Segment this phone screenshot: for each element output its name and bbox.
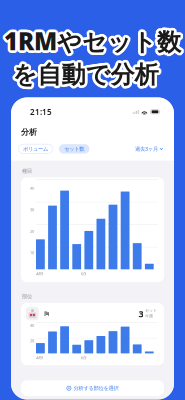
button[interactable]: 分析する部位を選択 xyxy=(11,365,174,396)
staticText: 4/09 xyxy=(36,271,43,276)
staticText: 1RMやセット数 xyxy=(5,24,182,56)
staticText: 1RMやセット数 xyxy=(2,26,179,58)
staticText: を自動で分析 xyxy=(11,58,157,88)
staticText: 20 xyxy=(30,228,34,234)
staticText: 1RMやセット数 xyxy=(7,25,184,57)
staticText: 種目 xyxy=(22,168,32,174)
staticText: 3 xyxy=(138,307,143,320)
staticText: 1RMやセット数 xyxy=(3,25,180,57)
staticText: 1RMやセット数 xyxy=(4,24,181,56)
staticText: 1RMやセット数 xyxy=(4,22,181,54)
staticText: 1RMやセット数 xyxy=(6,24,183,56)
staticText: 1RMやセット数 xyxy=(3,26,180,58)
staticText: セット数 xyxy=(64,146,84,152)
staticText: 40 xyxy=(30,185,34,191)
staticText: を自動で分析 xyxy=(11,60,157,89)
staticText: を自動で分析 xyxy=(12,59,158,88)
staticText: 40 xyxy=(30,322,34,328)
staticText: 分析 xyxy=(21,127,37,137)
staticText: 1RMやセット数 xyxy=(3,26,180,58)
staticText: 1RMやセット数 xyxy=(6,26,183,58)
staticText: 1RMやセット数 xyxy=(2,23,179,55)
staticText: を自動で分析 xyxy=(14,60,160,89)
staticText: を自動で分析 xyxy=(13,61,159,90)
button[interactable]: 過去3ヶ月 xyxy=(135,143,163,155)
staticText: 過去3ヶ月 xyxy=(135,145,158,152)
staticText: 1RMやセット数 xyxy=(3,24,180,56)
staticText: を自動で分析 xyxy=(11,58,157,87)
staticText: を自動で分析 xyxy=(11,60,157,90)
staticText: 1RMやセット数 xyxy=(4,25,181,57)
staticText: 1RMやセット数 xyxy=(6,23,183,55)
staticText: 1RMやセット数 xyxy=(3,27,180,59)
staticText: を自動で分析 xyxy=(10,59,156,88)
staticText: を自動で分析 xyxy=(10,61,156,90)
staticText: 6/3 xyxy=(81,355,86,360)
staticText: 1RMやセット数 xyxy=(2,27,179,59)
staticText: 1RMやセット数 xyxy=(5,23,182,55)
staticText: を自動で分析 xyxy=(14,58,160,88)
staticText: ボリューム xyxy=(23,146,48,152)
staticText: 10 xyxy=(30,250,34,255)
staticText: を自動で分析 xyxy=(15,60,161,89)
staticText: を自動で分析 xyxy=(12,60,158,89)
staticText: を自動で分析 xyxy=(13,62,159,92)
staticText: を自動で分析 xyxy=(12,61,158,91)
staticText: 1RMやセット数 xyxy=(4,28,181,60)
staticText: を自動で分析 xyxy=(11,61,157,90)
staticText: を自動で分析 xyxy=(10,60,156,89)
staticText: を自動で分析 xyxy=(11,62,157,92)
staticText: 1RMやセット数 xyxy=(5,26,182,58)
staticText: を自動で分析 xyxy=(12,59,158,88)
staticText: セット xyxy=(145,308,157,313)
staticText: 1RMやセット数 xyxy=(3,24,180,56)
staticText: 1RMやセット数 xyxy=(1,25,178,57)
staticText: 1RMやセット数 xyxy=(4,26,181,58)
staticText: 部位 xyxy=(22,293,32,300)
staticText: を自動で分析 xyxy=(14,60,160,90)
staticText: 1RMやセット数 xyxy=(5,25,182,57)
staticText: 20 xyxy=(30,338,34,343)
staticText: を自動で分析 xyxy=(11,59,157,88)
staticText: 1RMやセット数 xyxy=(6,27,183,59)
staticText: を自動で分析 xyxy=(12,63,158,92)
staticText: 1RMやセット数 xyxy=(3,24,180,56)
staticText: を自動で分析 xyxy=(11,62,157,91)
staticText: 1RMやセット数 xyxy=(2,24,179,56)
staticText: を自動で分析 xyxy=(14,62,160,91)
staticText: を自動で分析 xyxy=(14,59,160,89)
staticText: 1RMやセット数 xyxy=(4,24,181,56)
staticText: 21:15 xyxy=(30,106,52,117)
staticText: 6/3 xyxy=(81,271,86,276)
staticText: 1RMやセット数 xyxy=(5,24,182,56)
staticText: 1RMやセット数 xyxy=(5,27,182,59)
staticText: 4/09 xyxy=(36,355,43,360)
staticText: 分析する部位を選択 xyxy=(73,385,118,391)
button[interactable]: セット数 xyxy=(59,144,89,154)
staticText: を自動で分析 xyxy=(13,59,159,88)
staticText: を自動で分析 xyxy=(11,59,157,89)
staticText: を自動で分析 xyxy=(15,61,161,90)
staticText: を自動で分析 xyxy=(13,61,159,91)
staticText: を自動で分析 xyxy=(12,61,158,91)
staticText: 1RMやセット数 xyxy=(3,23,180,55)
staticText: 1RMやセット数 xyxy=(3,25,180,57)
staticText: を自動で分析 xyxy=(12,57,158,87)
staticText: 1RMやセット数 xyxy=(5,25,182,57)
staticText: 今週 xyxy=(145,313,153,318)
staticText: 胸 xyxy=(44,310,49,317)
staticText: を自動で分析 xyxy=(13,58,159,87)
button[interactable]: ボリューム xyxy=(19,144,53,154)
staticText: 30 xyxy=(30,207,34,212)
staticText: を自動で分析 xyxy=(15,59,161,88)
staticText: を自動で分析 xyxy=(13,59,159,88)
staticText: 1RMやセット数 xyxy=(4,26,181,58)
